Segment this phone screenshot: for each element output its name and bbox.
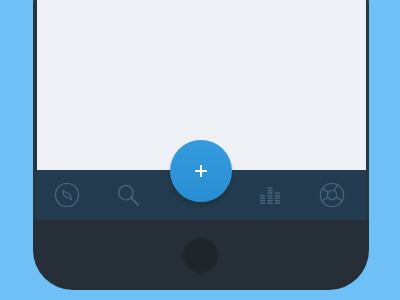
button[interactable]: Explore [50, 178, 84, 212]
button[interactable]: Add [170, 140, 232, 202]
button[interactable]: Profile [315, 178, 349, 212]
button[interactable]: Statistics [253, 178, 287, 212]
button[interactable]: Search [111, 178, 145, 212]
button[interactable]: Home [182, 237, 219, 274]
